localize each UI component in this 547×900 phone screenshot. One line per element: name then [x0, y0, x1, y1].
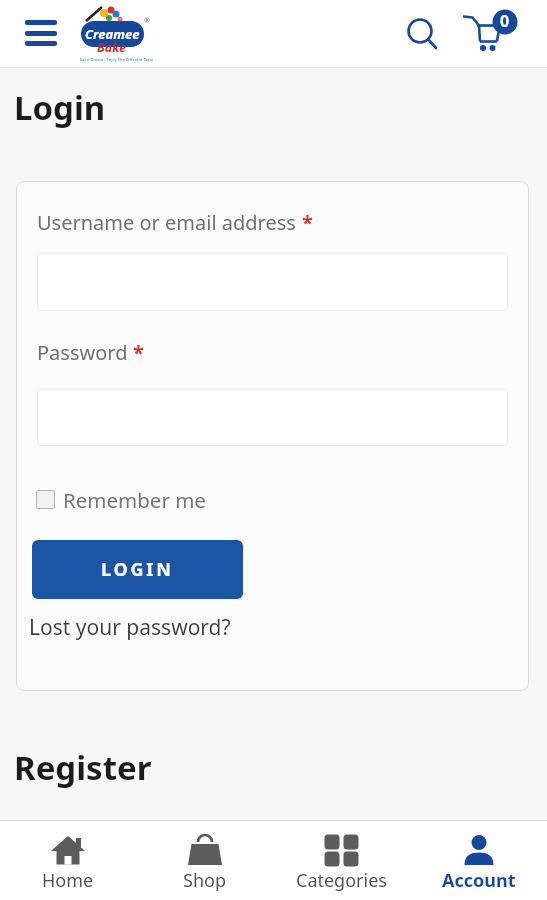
button[interactable]: Lost your password?	[29, 613, 231, 642]
button[interactable]: Account	[410, 821, 547, 900]
staticText: LOGIN	[101, 557, 174, 582]
staticText: Lost your password?	[29, 613, 231, 642]
staticText: Home	[42, 868, 94, 893]
staticText: *	[302, 209, 313, 236]
button[interactable]	[20, 14, 62, 52]
staticText: 0	[500, 10, 510, 32]
button[interactable]	[37, 389, 508, 446]
button[interactable]: Home	[0, 821, 136, 900]
staticText: Username or email address	[37, 209, 302, 236]
staticText: Login	[14, 85, 106, 130]
staticText: Remember me	[63, 486, 206, 512]
staticText: ®	[144, 16, 150, 26]
button[interactable]	[402, 12, 440, 52]
staticText: Eat n Dream - Enjoy The Different Taste	[80, 57, 154, 62]
button[interactable]	[37, 253, 508, 311]
button[interactable]: Categories	[273, 821, 410, 900]
staticText: Categories	[296, 868, 387, 893]
button[interactable]: Creamee	[70, 2, 155, 66]
staticText: Password	[37, 339, 133, 366]
staticText: Creamee	[85, 25, 140, 43]
button[interactable]: Remember me	[36, 486, 206, 512]
staticText: Register	[14, 745, 152, 790]
button[interactable]: Shop	[136, 821, 273, 900]
staticText: *	[133, 339, 144, 366]
staticText: Shop	[183, 868, 226, 893]
button[interactable]: 0	[458, 2, 522, 56]
button[interactable]: LOGIN	[32, 540, 243, 599]
staticText: Bake	[97, 39, 126, 56]
staticText: Account	[442, 868, 516, 893]
